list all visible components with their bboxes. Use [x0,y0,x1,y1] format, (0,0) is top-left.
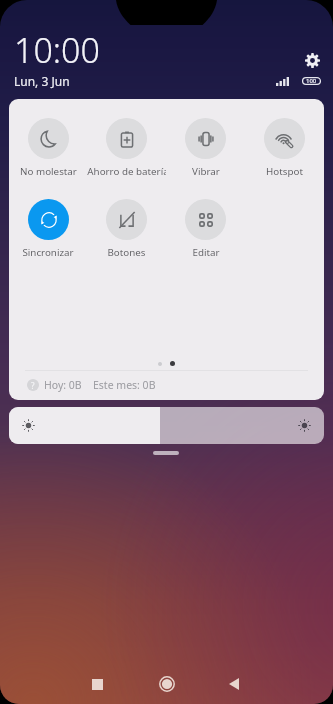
staticText: No molestar [20,165,77,178]
staticText: 10:00 [14,27,100,73]
staticText: Botones [107,246,146,259]
staticText: Vibrar [192,165,220,178]
button[interactable]: Settings [302,50,323,71]
staticText: ? [31,380,35,391]
button[interactable]: Recents [75,662,119,704]
staticText: Hotspot [266,165,303,178]
staticText: Editar [192,246,220,259]
button[interactable]: Brightness [9,407,324,444]
button[interactable]: Editar [166,199,245,259]
button[interactable]: Vibrar [166,118,245,178]
staticText: Sincronizar [22,246,74,259]
button[interactable]: Botones [87,199,166,259]
staticText: Hoy: 0B [44,378,82,392]
button[interactable]: Home [145,662,189,704]
button[interactable]: Ahorro de batería [87,118,166,178]
button[interactable]: Back [212,662,256,704]
button[interactable]: No molestar [9,118,87,178]
staticText: Lun, 3 Jun [14,73,70,89]
button[interactable]: Sincronizar [9,199,87,259]
staticText: Ahorro de batería [87,165,166,178]
staticText: 100 [306,77,317,85]
button[interactable]: Hotspot [245,118,324,178]
staticText: Este mes: 0B [93,378,156,392]
